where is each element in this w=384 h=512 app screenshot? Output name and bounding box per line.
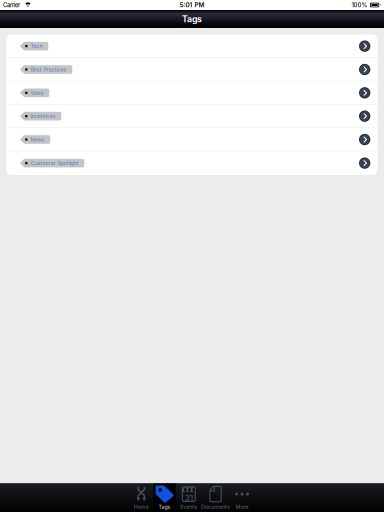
- staticText: Sales: [31, 90, 44, 96]
- staticText: Documents: [201, 504, 230, 510]
- button[interactable]: Home: [129, 483, 153, 512]
- button[interactable]: Sales: [6, 81, 377, 105]
- button[interactable]: More: [229, 483, 255, 512]
- staticText: Customer Spotlight: [31, 160, 79, 166]
- button[interactable]: Tags: [153, 483, 176, 512]
- staticText: Home: [134, 504, 149, 510]
- button[interactable]: Tech: [6, 35, 377, 58]
- staticText: 100%: [352, 1, 368, 9]
- staticText: 5:01 PM: [179, 1, 204, 9]
- button[interactable]: Documents: [202, 483, 229, 512]
- staticText: More: [236, 504, 249, 510]
- staticText: Tags: [182, 14, 202, 24]
- staticText: 31: [185, 493, 193, 503]
- button[interactable]: Best Practices: [6, 58, 377, 81]
- staticText: Tags: [158, 504, 170, 510]
- staticText: Tech: [31, 43, 43, 49]
- staticText: Carrier: [3, 1, 20, 9]
- button[interactable]: News: [6, 128, 377, 151]
- button[interactable]: 31: [176, 483, 202, 512]
- staticText: News: [31, 136, 45, 143]
- staticText: Events: [180, 504, 197, 510]
- button[interactable]: Incentives: [6, 105, 377, 128]
- staticText: Best Practices: [31, 66, 67, 73]
- button[interactable]: Customer Spotlight: [6, 151, 377, 175]
- staticText: Incentives: [31, 113, 56, 119]
